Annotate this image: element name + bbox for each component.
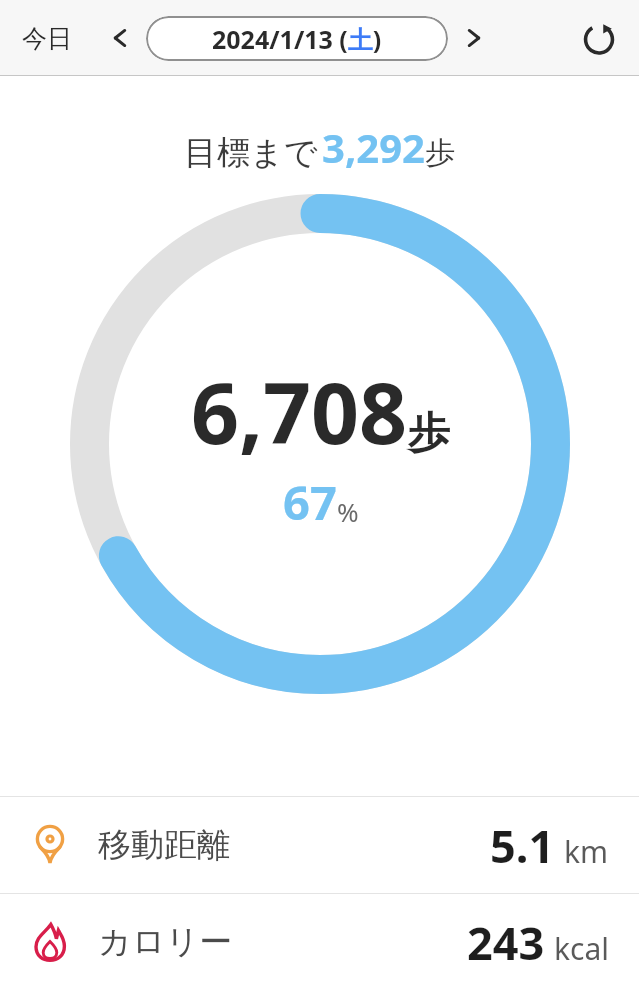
other: Distance	[28, 823, 72, 867]
staticText: km	[564, 831, 609, 872]
button[interactable]: Calories	[0, 894, 639, 990]
staticText: 6,708	[191, 354, 408, 468]
button[interactable]: Refresh	[573, 12, 625, 64]
staticText: 2024/1/13 (土)	[212, 22, 382, 56]
staticText: 243	[467, 912, 545, 973]
staticText: 歩	[425, 134, 455, 172]
other: Calories	[28, 920, 72, 964]
button[interactable]: 2024/1/13 (土)	[146, 16, 448, 61]
staticText: 目標まで	[184, 132, 318, 174]
staticText: 5.1	[490, 815, 555, 876]
staticText: %	[337, 494, 359, 529]
button[interactable]: Previous day	[100, 18, 140, 58]
staticText: カロリー	[98, 921, 233, 963]
button[interactable]: Next day	[454, 18, 494, 58]
staticText: 3,292	[322, 120, 425, 174]
staticText: 67	[283, 470, 337, 534]
button[interactable]: Distance	[0, 797, 639, 893]
button[interactable]: 今日	[14, 17, 80, 60]
staticText: 移動距離	[98, 824, 230, 866]
staticText: kcal	[554, 928, 609, 969]
staticText: 歩	[408, 407, 450, 460]
staticText: 今日	[22, 23, 72, 54]
